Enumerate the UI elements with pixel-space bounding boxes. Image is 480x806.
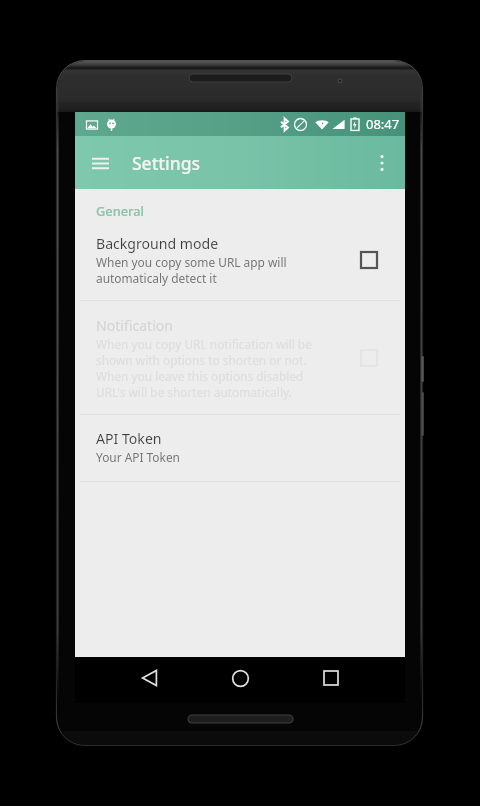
staticText: API Token [96, 429, 162, 448]
button[interactable]: More options [362, 143, 402, 183]
button[interactable]: API Token [75, 415, 405, 481]
button[interactable]: Home [218, 660, 262, 696]
staticText: When you copy URL notification will be s… [96, 336, 312, 400]
button[interactable]: Recent apps [309, 660, 353, 696]
staticText: General [96, 202, 144, 219]
staticText: Background mode [96, 234, 219, 253]
button[interactable]: Toggle Background mode [353, 244, 385, 276]
button[interactable]: Back [127, 660, 171, 696]
button[interactable]: Notification [75, 301, 405, 414]
staticText: Your API Token [96, 449, 180, 465]
button[interactable]: Background mode [75, 222, 405, 300]
staticText: When you copy some URL app will automati… [96, 254, 287, 286]
staticText: Settings [132, 151, 201, 175]
staticText: Notification [96, 316, 174, 335]
button[interactable]: Open navigation drawer [80, 143, 120, 183]
staticText: 08:47 [366, 115, 400, 133]
